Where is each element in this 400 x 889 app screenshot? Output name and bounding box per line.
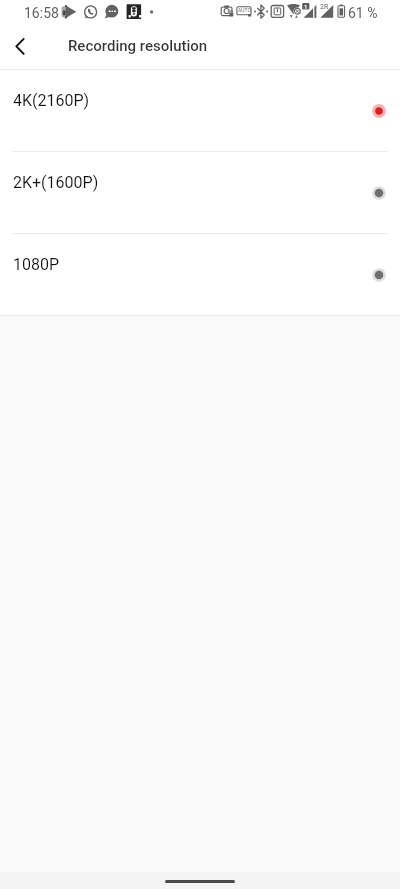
button[interactable]: Back xyxy=(0,28,40,69)
staticText: 2K+(1600P) xyxy=(13,173,99,192)
staticText: 2R xyxy=(320,3,329,11)
button[interactable]: 1080P xyxy=(0,234,400,315)
staticText: AUTO xyxy=(238,7,251,13)
staticText: 1 xyxy=(304,3,308,10)
staticText: 61 % xyxy=(348,5,378,21)
staticText: 16:58 xyxy=(24,5,59,21)
staticText: 1080P xyxy=(13,255,60,274)
staticText: 4K(2160P) xyxy=(13,91,90,110)
staticText: Recording resolution xyxy=(68,37,208,55)
button[interactable]: 4K(2160P) xyxy=(0,70,400,151)
button[interactable]: 2K+(1600P) xyxy=(0,152,400,233)
